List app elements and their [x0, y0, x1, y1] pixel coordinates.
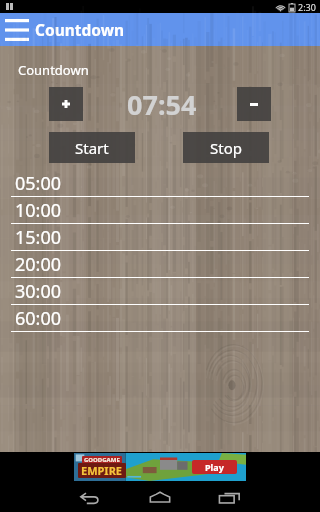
- staticText: Stop: [210, 138, 242, 158]
- button[interactable]: Advertisement: Goodgame Empire: [74, 453, 246, 481]
- button[interactable]: 30:00: [0, 278, 320, 305]
- staticText: Start: [75, 138, 109, 158]
- button[interactable]: 60:00: [0, 305, 320, 332]
- staticText: 07:54: [127, 86, 197, 123]
- staticText: Play: [205, 461, 224, 473]
- staticText: 20:00: [15, 252, 62, 277]
- staticText: 10:00: [15, 198, 62, 223]
- staticText: 15:00: [15, 225, 62, 250]
- button[interactable]: 20:00: [0, 251, 320, 278]
- staticText: GOODGAME: [84, 456, 120, 464]
- button[interactable]: 05:00: [0, 170, 320, 197]
- staticText: 2:30: [298, 1, 316, 13]
- button[interactable]: Decrease time: [237, 87, 271, 121]
- button[interactable]: Home: [130, 482, 190, 512]
- button[interactable]: Back: [0, 482, 130, 512]
- button[interactable]: Increase time: [49, 87, 83, 121]
- button[interactable]: Recent apps: [190, 482, 320, 512]
- button[interactable]: Start: [49, 132, 135, 163]
- staticText: 30:00: [15, 279, 62, 304]
- staticText: EMPIRE: [81, 463, 123, 478]
- staticText: 60:00: [15, 306, 62, 331]
- staticText: 05:00: [15, 171, 62, 196]
- button[interactable]: 15:00: [0, 224, 320, 251]
- button[interactable]: Play: [192, 460, 237, 474]
- button[interactable]: 10:00: [0, 197, 320, 224]
- button[interactable]: Menu: [0, 13, 35, 46]
- button[interactable]: Stop: [183, 132, 269, 163]
- staticText: Countdown: [35, 19, 125, 40]
- staticText: Countdown: [18, 61, 89, 79]
